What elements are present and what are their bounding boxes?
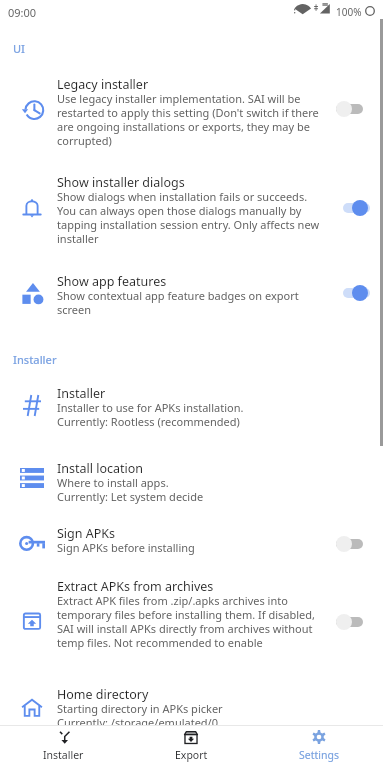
button[interactable]: Off	[336, 532, 372, 556]
staticText: Show dialogs when installation fails or …	[57, 189, 321, 246]
staticText: Installer	[43, 748, 84, 762]
button[interactable]: Legacy installer	[57, 76, 321, 150]
staticText: UI	[13, 41, 26, 56]
staticText: Legacy installer	[57, 76, 149, 93]
staticText: Installer	[13, 352, 57, 367]
staticText: Starting directory in APKs picker Curren…	[57, 701, 223, 730]
staticText: Installer	[57, 385, 106, 402]
staticText: Export	[175, 748, 208, 762]
staticText: Where to install apps. Currently: Let sy…	[57, 475, 204, 504]
button[interactable]: Install location	[57, 460, 321, 506]
button[interactable]: Show installer dialogs	[57, 174, 321, 248]
staticText: Home directory	[57, 686, 149, 703]
staticText: Show contextual app feature badges on ex…	[57, 288, 321, 317]
button[interactable]: Show app features	[57, 273, 321, 319]
staticText: Sign APKs before installing	[57, 540, 195, 555]
other: Installer	[59, 731, 70, 744]
staticText: 09:00	[8, 5, 37, 20]
staticText: Show installer dialogs	[57, 174, 185, 191]
button[interactable]: Export	[127, 726, 255, 766]
staticText: Extract APK files from .zip/.apks archiv…	[57, 593, 321, 650]
button[interactable]: Installer	[57, 385, 321, 431]
staticText: 100%	[336, 5, 362, 19]
other: Export	[184, 731, 198, 744]
button[interactable]: Off	[336, 610, 372, 634]
staticText: Sign APKs	[57, 525, 116, 542]
other: Settings	[312, 730, 326, 744]
staticText: Install location	[57, 460, 144, 477]
button[interactable]: On	[336, 196, 372, 220]
staticText: Use legacy installer implementation. SAI…	[57, 91, 321, 148]
button[interactable]: Sign APKs	[57, 525, 321, 557]
button[interactable]: Off	[336, 97, 372, 121]
button[interactable]: Settings	[255, 726, 383, 766]
button[interactable]: On	[336, 281, 372, 305]
button[interactable]: Home directory	[57, 686, 321, 732]
staticText: Installer to use for APKs installation. …	[57, 400, 244, 429]
staticText: Settings	[299, 748, 339, 762]
staticText: Show app features	[57, 273, 167, 290]
button[interactable]: Extract APKs from archives	[57, 578, 321, 652]
staticText: Extract APKs from archives	[57, 578, 214, 595]
button[interactable]: Installer	[0, 726, 127, 766]
